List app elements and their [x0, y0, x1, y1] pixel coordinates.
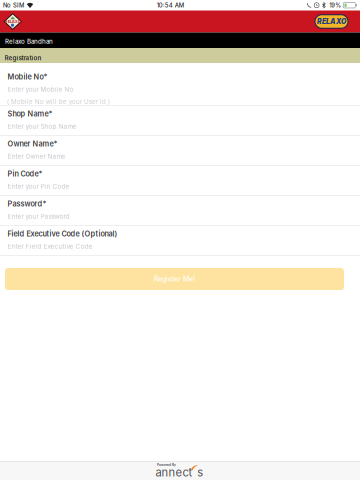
staticText: ( Mobile No will be your User Id ) [7, 98, 110, 106]
staticText: 19% [329, 2, 341, 9]
staticText: Registration [5, 54, 42, 62]
staticText: Pin Code* [7, 169, 42, 178]
button[interactable]: Shop Name* [0, 106, 360, 136]
staticText: No SIM [3, 2, 24, 9]
staticText: Enter your Password [7, 213, 69, 220]
button[interactable]: Register Me! [5, 268, 344, 290]
button[interactable]: Pin Code* [0, 166, 360, 196]
staticText: Relaxo Bandhan [5, 38, 53, 45]
staticText: Enter Field Executive Code [7, 243, 92, 250]
staticText: Shop Name* [7, 109, 52, 118]
staticText: Enter your Mobile No [7, 86, 73, 93]
staticText: Field Executive Code (Optional) [7, 229, 117, 238]
staticText: Password* [7, 199, 46, 208]
staticText: s [197, 466, 203, 479]
button[interactable]: Field Executive Code (Optional) [0, 226, 360, 256]
staticText: Enter Owner Name [7, 153, 65, 160]
staticText: Enter your Pin Code [7, 183, 69, 190]
staticText: Register Me! [154, 275, 195, 283]
staticText: Owner Name* [7, 139, 57, 148]
staticText: Enter your Shop Name [7, 123, 76, 130]
staticText: Mobile No* [7, 72, 47, 81]
button[interactable]: Owner Name* [0, 136, 360, 166]
staticText: RELAXO [317, 17, 346, 26]
staticText: Powered By [157, 463, 176, 467]
button[interactable]: Password* [0, 196, 360, 226]
staticText: annect [156, 466, 193, 479]
button[interactable]: Mobile No* [0, 63, 360, 106]
staticText: 10:54 AM [157, 2, 184, 9]
staticText: RELAXO [5, 19, 21, 24]
